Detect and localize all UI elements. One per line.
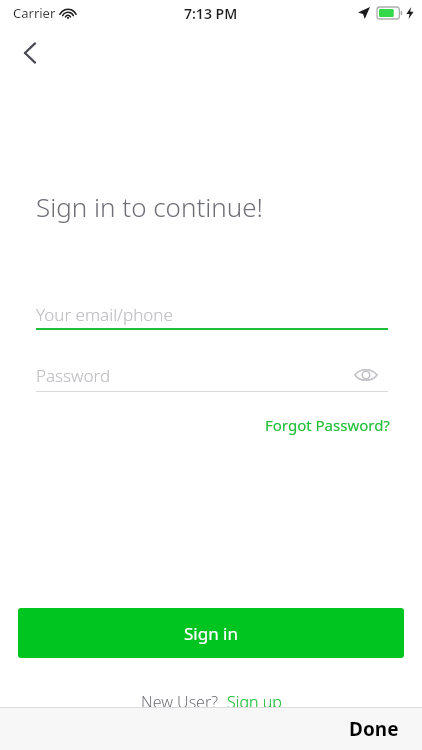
staticText: Forgot Password? — [265, 415, 390, 435]
button[interactable]: Your email/phone — [36, 298, 388, 330]
staticText: Sign in — [184, 622, 238, 645]
button[interactable]: Forgot Password? — [250, 411, 390, 439]
staticText: Sign up — [227, 691, 282, 713]
button[interactable]: Show password — [348, 358, 384, 392]
staticText: Password — [36, 364, 111, 387]
button[interactable]: Back — [6, 30, 54, 76]
staticText: 7:13 PM — [184, 4, 238, 23]
button[interactable]: Sign up — [227, 691, 282, 713]
staticText: Carrier — [13, 4, 56, 22]
staticText: Done — [349, 716, 399, 742]
button[interactable]: Password — [36, 359, 388, 391]
staticText: New User? — [141, 691, 219, 713]
button[interactable]: Done — [330, 707, 418, 750]
staticText: Sign in to continue! — [36, 189, 263, 224]
button[interactable]: Sign in — [18, 608, 404, 658]
staticText: Your email/phone — [36, 303, 173, 326]
